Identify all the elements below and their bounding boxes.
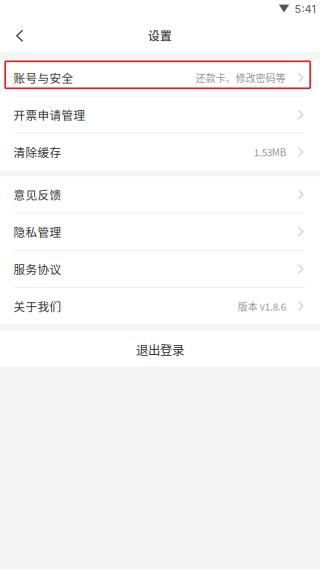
staticText: 账号与安全 bbox=[13, 69, 73, 86]
staticText: 设置 bbox=[148, 27, 172, 44]
staticText: 隐私管理 bbox=[13, 223, 61, 240]
staticText: 清除缓存 bbox=[13, 144, 61, 160]
button[interactable]: 服务协议 bbox=[0, 251, 320, 287]
button[interactable]: 退出登录 bbox=[0, 330, 320, 366]
staticText: 退出登录 bbox=[136, 340, 184, 358]
staticText: 服务协议 bbox=[13, 260, 61, 277]
button[interactable]: 账号与安全 bbox=[0, 59, 320, 96]
button[interactable]: 隐私管理 bbox=[0, 214, 320, 250]
button[interactable]: 意见反馈 bbox=[0, 176, 320, 213]
button[interactable]: 关于我们 bbox=[0, 288, 320, 324]
button[interactable]: 开票申请管理 bbox=[0, 97, 320, 133]
staticText: 版本 v1.8.6 bbox=[238, 299, 286, 313]
staticText: 开票申请管理 bbox=[13, 106, 85, 123]
staticText: 5:41 bbox=[294, 2, 315, 15]
button[interactable]: Back bbox=[0, 22, 35, 52]
staticText: 还款卡、修改密码等 bbox=[196, 70, 286, 85]
staticText: 1.53MB bbox=[254, 145, 286, 159]
staticText: 意见反馈 bbox=[13, 186, 61, 203]
button[interactable]: 清除缓存 bbox=[0, 134, 320, 170]
staticText: 关于我们 bbox=[13, 298, 61, 314]
